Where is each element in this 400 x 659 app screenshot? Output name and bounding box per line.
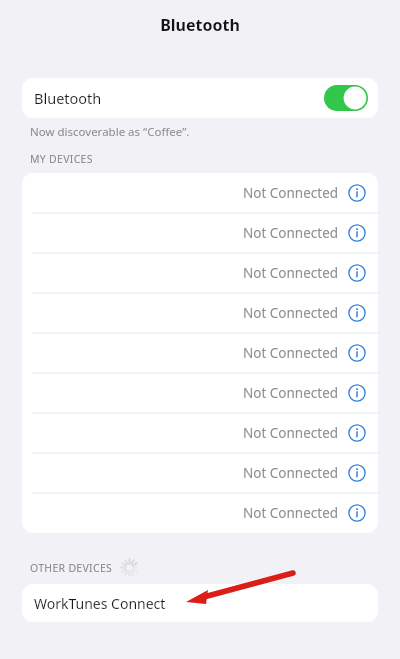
button[interactable]: Not Connected (22, 413, 378, 453)
button[interactable]: WorkTunes Connect (22, 584, 378, 622)
staticText: Not Connected (243, 424, 339, 442)
staticText: Not Connected (243, 224, 339, 242)
staticText: WorkTunes Connect (34, 594, 166, 613)
staticText: Now discoverable as “Coffee”. (30, 124, 190, 140)
button[interactable]: More info (346, 222, 368, 244)
button[interactable]: Not Connected (22, 213, 378, 253)
staticText: Bluetooth (160, 14, 240, 36)
button[interactable]: Not Connected (22, 373, 378, 413)
button[interactable]: More info (346, 302, 368, 324)
button[interactable]: Not Connected (22, 333, 378, 373)
staticText: Not Connected (243, 184, 339, 202)
button[interactable]: More info (346, 382, 368, 404)
button[interactable]: More info (346, 342, 368, 364)
button[interactable]: Not Connected (22, 253, 378, 293)
button[interactable]: Not Connected (22, 293, 378, 333)
staticText: Not Connected (243, 464, 339, 482)
button[interactable]: Bluetooth on (324, 85, 368, 111)
button[interactable]: Bluetooth (22, 78, 378, 118)
button[interactable]: More info (346, 502, 368, 524)
staticText: OTHER DEVICES (30, 561, 113, 575)
staticText: Bluetooth (34, 88, 102, 108)
button[interactable]: Not Connected (22, 173, 378, 213)
button[interactable]: More info (346, 182, 368, 204)
staticText: Not Connected (243, 264, 339, 282)
staticText: Not Connected (243, 504, 339, 522)
staticText: Not Connected (243, 384, 339, 402)
button[interactable]: More info (346, 462, 368, 484)
button[interactable]: Not Connected (22, 453, 378, 493)
staticText: Not Connected (243, 304, 339, 322)
staticText: MY DEVICES (30, 152, 93, 166)
staticText: Not Connected (243, 344, 339, 362)
button[interactable]: More info (346, 262, 368, 284)
button[interactable]: Not Connected (22, 493, 378, 533)
button[interactable]: More info (346, 422, 368, 444)
